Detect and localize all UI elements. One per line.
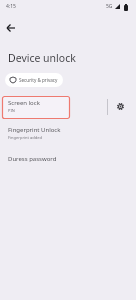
staticText: Fingerprint added [8,135,42,140]
staticText: 4:15 [6,3,16,10]
staticText: 5G [106,3,113,10]
button[interactable]: Fingerprint Unlock [0,122,136,147]
button[interactable]: Duress password [0,150,136,170]
button[interactable]: Security & privacy [5,73,63,87]
staticText: Device unlock [8,51,76,65]
staticText: Fingerprint Unlock [8,126,61,134]
staticText: Security & privacy [19,77,58,83]
button[interactable] [112,98,129,115]
staticText: Screen lock [8,99,40,107]
button[interactable]: Screen lock [0,95,136,120]
staticText: PIN [8,108,15,113]
button[interactable] [3,20,19,36]
staticText: Duress password [8,155,57,163]
